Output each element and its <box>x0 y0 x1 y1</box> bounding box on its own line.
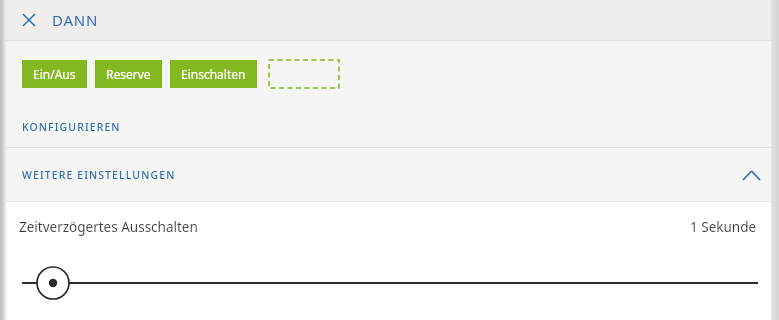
button[interactable]: Schließen <box>17 8 41 32</box>
staticText: Zeitverzögertes Ausschalten <box>19 218 198 236</box>
staticText: DANN <box>52 10 99 30</box>
button[interactable]: Aktion hinzufügen <box>269 60 339 88</box>
staticText: KONFIGURIEREN <box>22 120 121 134</box>
button[interactable]: Ein/Aus <box>22 60 87 88</box>
button[interactable]: Reserve <box>95 60 162 88</box>
button[interactable]: Verzögerung einstellen <box>0 252 779 308</box>
staticText: Einschalten <box>181 66 246 82</box>
button[interactable]: KONFIGURIEREN <box>0 107 779 147</box>
staticText: Ein/Aus <box>33 66 76 82</box>
button[interactable]: WEITERE EINSTELLUNGEN <box>0 148 779 201</box>
staticText: 1 Sekunde <box>690 218 757 236</box>
staticText: WEITERE EINSTELLUNGEN <box>22 168 176 182</box>
staticText: Reserve <box>106 66 151 82</box>
button[interactable]: Zeitverzögertes Ausschalten <box>0 202 779 252</box>
button[interactable]: Einschalten <box>170 60 257 88</box>
